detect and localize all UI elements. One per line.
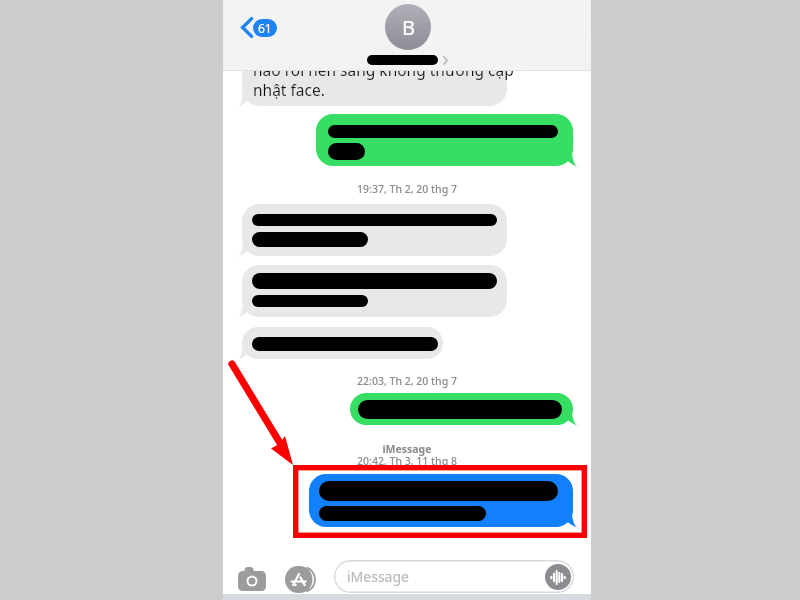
button[interactable] (338, 393, 585, 431)
staticText: B (402, 14, 415, 41)
staticText: 19:37, Th 2, 20 thg 7 (357, 182, 457, 196)
button[interactable]: Contact details (367, 4, 448, 65)
button[interactable]: iMessage (334, 560, 574, 593)
button[interactable]: Camera (237, 566, 266, 592)
staticText: 61 (258, 20, 272, 36)
button[interactable]: Record audio message (545, 564, 571, 590)
button[interactable]: App Store apps (285, 566, 316, 593)
button[interactable] (230, 204, 519, 262)
button[interactable]: Back to conversations, 61 unread (238, 14, 280, 41)
staticText: nào rồi nên sang không thường cập nhật f… (253, 59, 514, 100)
staticText: iMessage (347, 567, 409, 586)
staticText: 22:03, Th 2, 20 thg 7 (357, 374, 457, 388)
button[interactable]: nào rồi nên sang không thường cập nhật f… (230, 54, 519, 112)
button[interactable] (297, 474, 585, 533)
staticText: 20:42, Th 3, 11 thg 8 (357, 454, 457, 468)
staticText: iMessage (382, 442, 432, 456)
button[interactable] (230, 327, 455, 365)
button[interactable] (230, 265, 519, 323)
button[interactable] (304, 114, 585, 172)
